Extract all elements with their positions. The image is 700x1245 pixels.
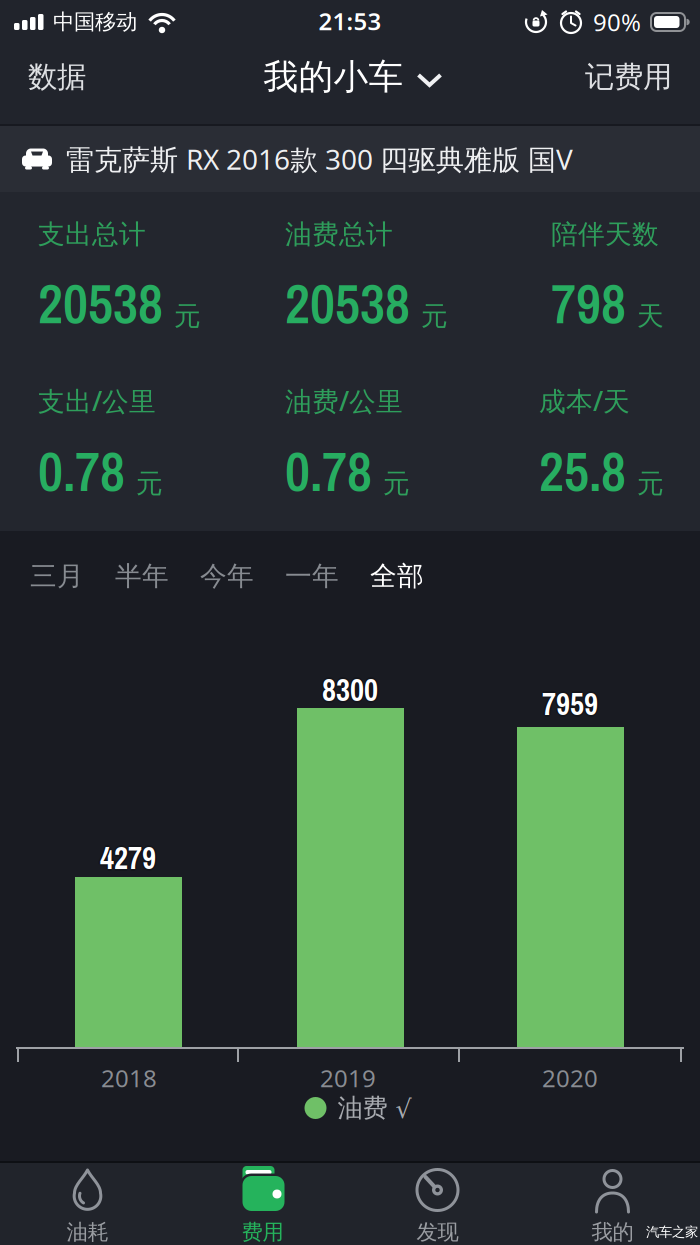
button[interactable]: 油耗 [0,1166,175,1245]
staticText: 4279 [98,837,154,879]
staticText: 8300 [322,669,378,711]
staticText: 0.78 [38,434,125,508]
staticText: 4279 [100,837,156,879]
button[interactable]: 发现 [350,1166,525,1245]
staticText: 中国移动 [53,9,137,35]
staticText: 我的小车 [263,56,403,98]
staticText: 7959 [542,685,598,727]
staticText: 4279 [102,837,158,879]
staticText: 元 [421,300,448,332]
staticText: 支出/公里 [38,383,156,418]
staticText: 油费/公里 [285,383,403,418]
staticText: 一年 [285,560,339,592]
button[interactable]: 全部 [370,560,424,592]
staticText: 数据 [28,59,86,95]
staticText: 我的 [591,1219,633,1245]
staticText: 油费总计 [285,218,393,251]
staticText: 雷克萨斯 RX 2016款 300 四驱典雅版 国V [66,140,573,178]
staticText: 20538 [285,267,410,340]
button[interactable]: 我的小车 [263,56,442,98]
staticText: 8300 [322,667,378,709]
staticText: 费用 [241,1219,283,1245]
staticText: 2019 [320,1062,376,1094]
staticText: 半年 [115,560,169,592]
button[interactable]: 数据 [0,59,86,95]
staticText: 油费 √ [337,1092,411,1123]
button[interactable]: 半年 [115,560,169,592]
staticText: 支出总计 [38,218,146,251]
staticText: 4279 [100,839,156,881]
staticText: 陪伴天数 [551,218,659,251]
staticText: 8300 [324,669,380,711]
button[interactable]: 雷克萨斯 RX 2016款 300 四驱典雅版 国V [0,126,700,192]
staticText: 0.78 [285,434,372,508]
staticText: 2020 [542,1062,598,1094]
staticText: 90% [593,6,641,38]
staticText: 25.8 [539,434,626,508]
staticText: 记费用 [585,59,672,95]
staticText: 元 [383,467,410,500]
button[interactable]: 我的 [525,1166,700,1245]
staticText: 三月 [30,560,84,592]
staticText: 4279 [100,835,156,877]
staticText: 发现 [416,1219,458,1245]
staticText: 元 [174,300,201,332]
button[interactable]: 三月 [30,560,84,592]
staticText: 今年 [200,560,254,592]
button[interactable]: 费用 [175,1166,350,1245]
staticText: 21:53 [318,5,381,37]
staticText: 798 [551,267,626,340]
staticText: 天 [637,300,664,332]
staticText: 汽车之家 [646,1224,698,1240]
staticText: 全部 [370,560,424,592]
staticText: 7959 [542,681,598,723]
staticText: 8300 [320,669,376,711]
staticText: 油耗 [66,1219,108,1245]
button[interactable]: 今年 [200,560,254,592]
button[interactable]: 一年 [285,560,339,592]
staticText: 成本/天 [539,383,630,418]
button[interactable]: 记费用 [585,59,700,95]
staticText: 20538 [38,267,163,340]
staticText: 元 [637,467,664,500]
staticText: 元 [136,467,163,500]
staticText: 7959 [544,683,600,725]
staticText: 8300 [322,671,378,713]
staticText: 7959 [542,683,598,725]
staticText: 2018 [101,1062,157,1094]
staticText: 7959 [540,683,596,725]
